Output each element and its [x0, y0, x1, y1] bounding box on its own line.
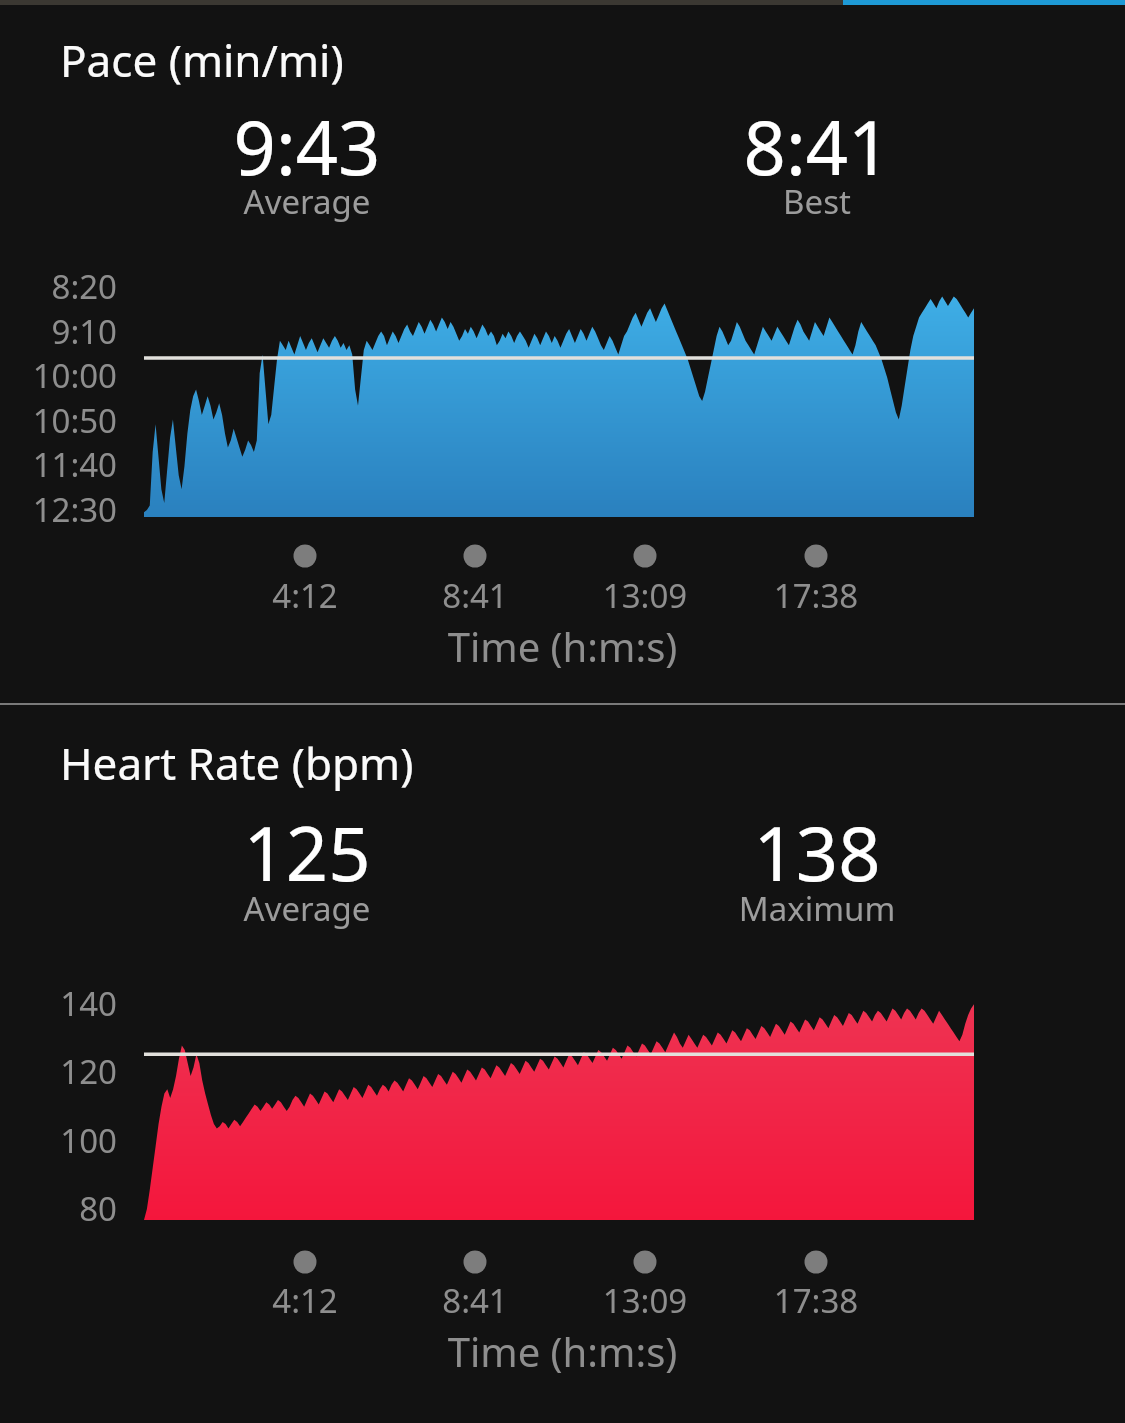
staticText: 120 [0, 1049, 117, 1094]
staticText: 8:41 [355, 573, 595, 618]
staticText: 13:09 [525, 1278, 765, 1323]
staticText: 9:10 [0, 309, 117, 354]
staticText: 10:50 [0, 398, 117, 443]
staticText: 100 [0, 1118, 117, 1163]
button[interactable]: 8:41 [617, 96, 1017, 197]
button[interactable]: 9:43 [107, 96, 507, 197]
staticText: 8:41 [617, 96, 1017, 197]
staticText: Time (h:m:s) [0, 1324, 1125, 1378]
staticText: Average [107, 179, 507, 224]
staticText: 11:40 [0, 442, 117, 487]
staticText: 17:38 [696, 573, 936, 618]
staticText: 17:38 [696, 1278, 936, 1323]
staticText: 80 [0, 1186, 117, 1231]
staticText: 4:12 [185, 573, 425, 618]
staticText: 8:41 [355, 1278, 595, 1323]
staticText: Best [617, 179, 1017, 224]
staticText: Average [107, 886, 507, 931]
staticText: Time (h:m:s) [0, 619, 1125, 673]
staticText: Heart Rate (bpm) [60, 733, 414, 793]
button[interactable]: 138 [617, 802, 1017, 903]
staticText: 13:09 [525, 573, 765, 618]
staticText: 8:20 [0, 264, 117, 309]
staticText: 140 [0, 981, 117, 1026]
staticText: Pace (min/mi) [60, 30, 344, 90]
staticText: 138 [617, 802, 1017, 903]
button[interactable]: 125 [107, 802, 507, 903]
staticText: 10:00 [0, 353, 117, 398]
staticText: 9:43 [107, 96, 507, 197]
staticText: 125 [107, 802, 507, 903]
staticText: Maximum [617, 886, 1017, 931]
staticText: 4:12 [185, 1278, 425, 1323]
staticText: 12:30 [0, 487, 117, 532]
